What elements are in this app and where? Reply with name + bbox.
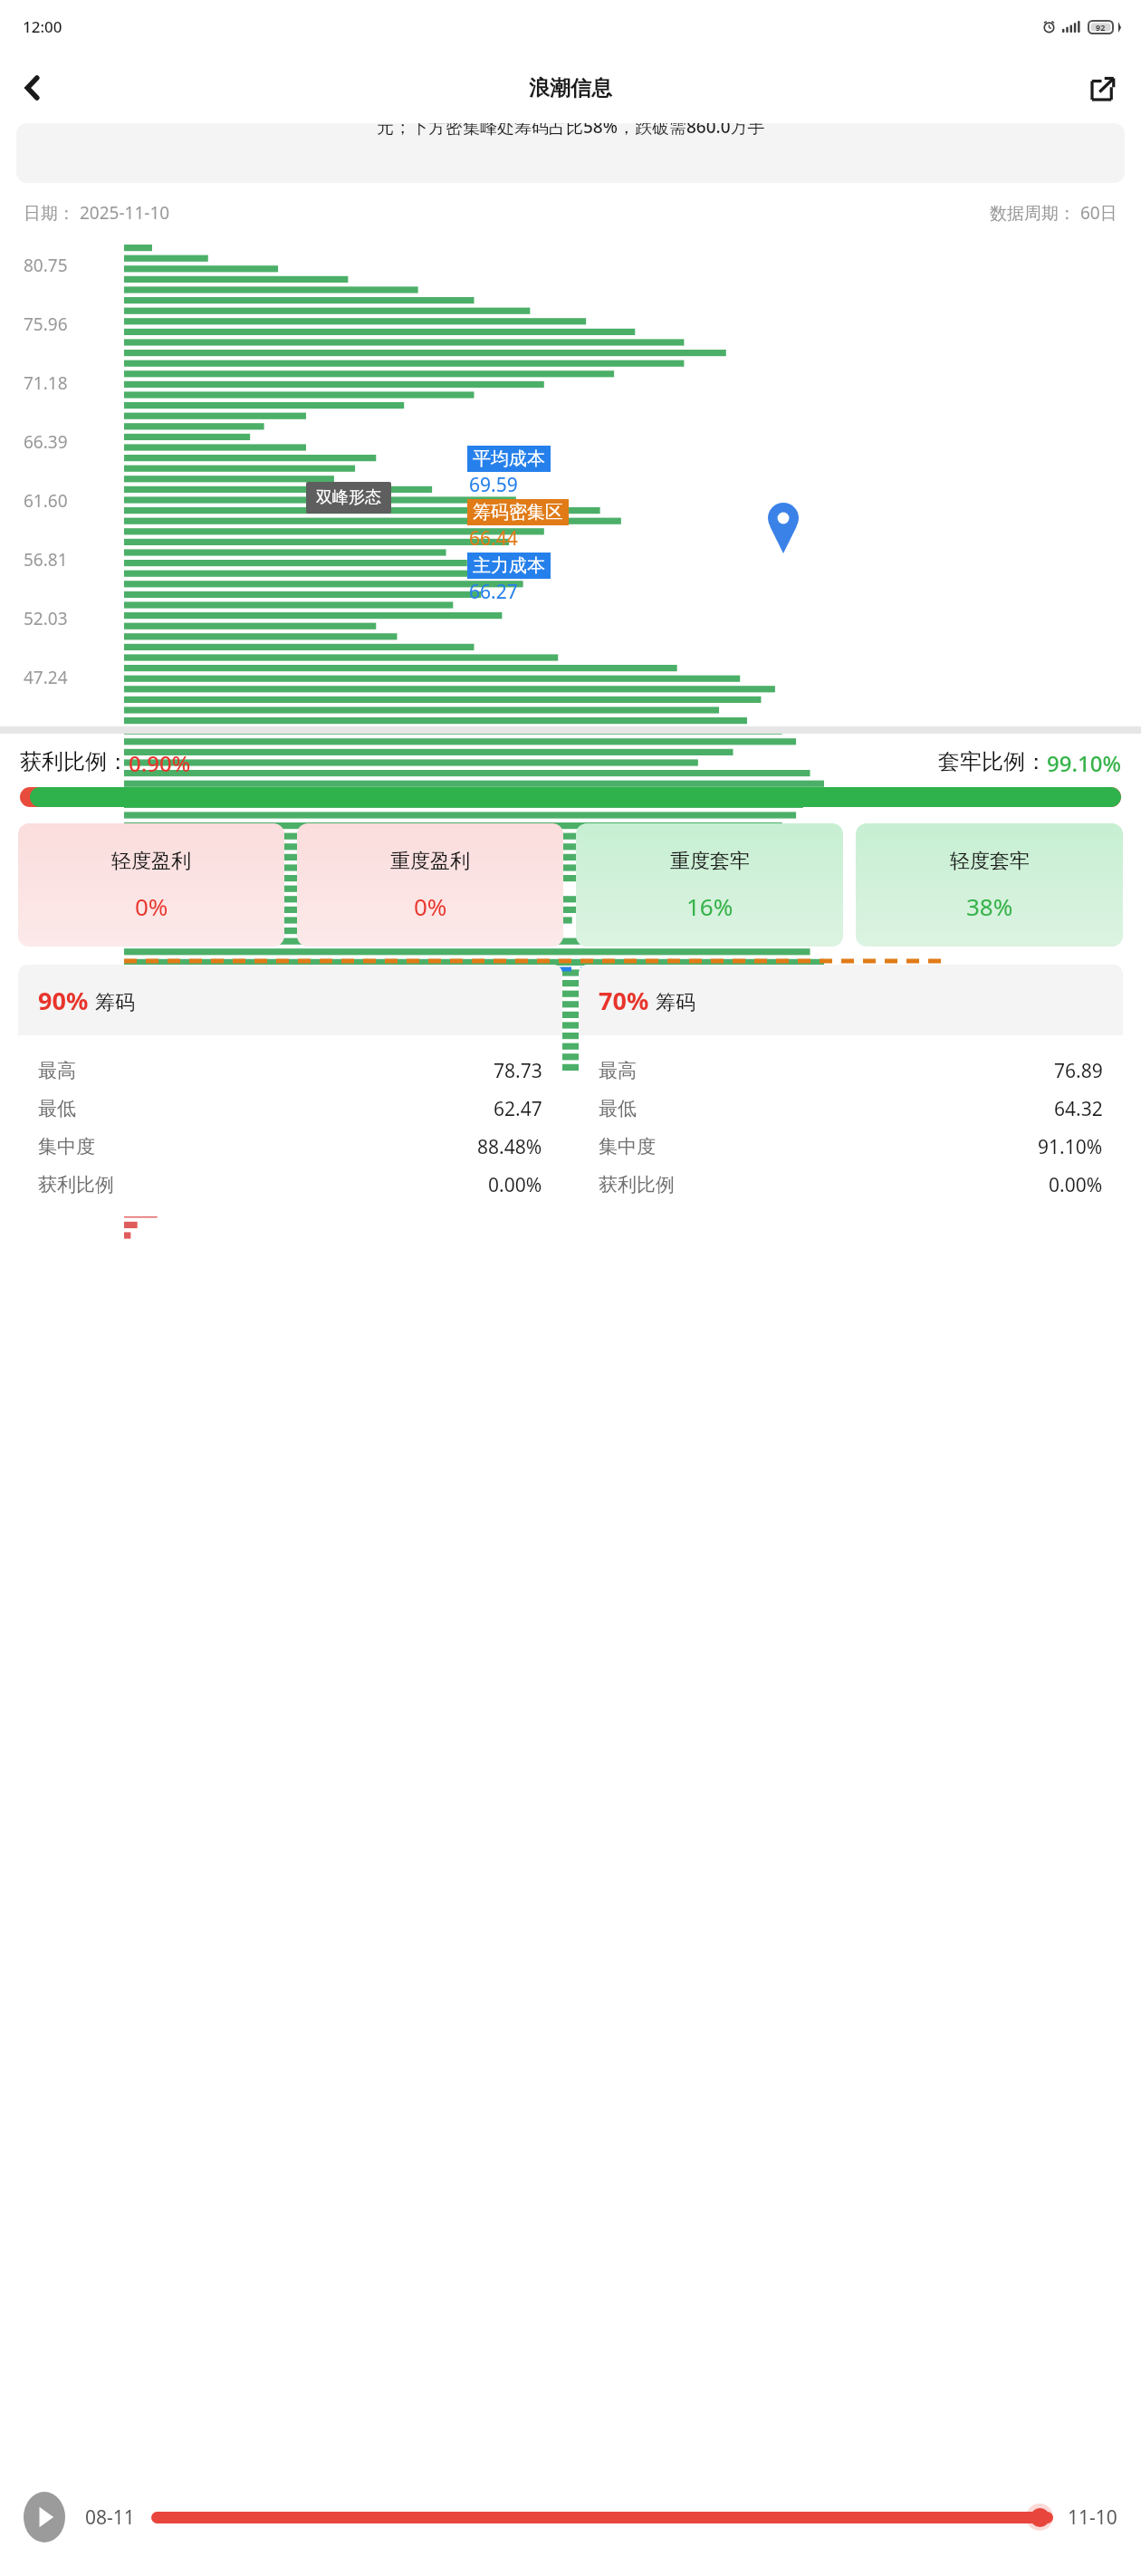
staticText: 轻度套牢 xyxy=(950,849,1030,874)
staticText: 66.27 xyxy=(469,579,518,605)
button[interactable]: Share xyxy=(1078,62,1128,113)
staticText: 76.89 xyxy=(1054,1058,1103,1084)
staticText: 92 xyxy=(1096,22,1106,33)
staticText: 99.10% xyxy=(1047,748,1121,778)
staticText: 75.96 xyxy=(24,312,68,336)
staticText: 0.90% xyxy=(129,748,191,778)
button[interactable]: Back xyxy=(7,62,58,113)
staticText: 最高 xyxy=(599,1059,637,1082)
staticText: 0% xyxy=(414,890,447,922)
staticText: 筹码密集区 xyxy=(473,501,563,524)
staticText: 双峰形态 xyxy=(316,487,381,508)
staticText: 日期： 2025-11-10 xyxy=(24,201,170,225)
staticText: 平均成本 xyxy=(473,447,545,470)
staticText: 66.44 xyxy=(469,525,518,552)
staticText: 90% xyxy=(38,984,89,1017)
staticText: 重度盈利 xyxy=(390,849,470,874)
staticText: 61.60 xyxy=(24,489,68,513)
staticText: 78.73 xyxy=(494,1058,542,1084)
staticText: 最高 xyxy=(38,1059,76,1082)
staticText: 62.47 xyxy=(494,1096,542,1122)
button[interactable]: 重度盈利 xyxy=(297,823,563,947)
staticText: 88.48% xyxy=(477,1134,542,1160)
staticText: 69.59 xyxy=(469,472,518,498)
staticText: 71.18 xyxy=(24,371,68,395)
staticText: 0% xyxy=(135,890,168,922)
staticText: 数据周期： 60日 xyxy=(990,201,1117,225)
staticText: 12:00 xyxy=(23,16,62,37)
button[interactable]: 轻度套牢 xyxy=(856,823,1123,947)
staticText: 38% xyxy=(966,890,1013,922)
staticText: 主力成本 xyxy=(473,554,545,577)
staticText: 11-10 xyxy=(1068,2504,1117,2531)
staticText: 获利比例 xyxy=(38,1173,114,1197)
staticText: 64.32 xyxy=(1054,1096,1103,1122)
staticText: 80.75 xyxy=(24,254,68,277)
staticText: 获利比例 xyxy=(599,1173,675,1197)
button[interactable]: Play xyxy=(24,2492,65,2542)
staticText: 浪潮信息 xyxy=(529,75,612,101)
staticText: 筹码 xyxy=(95,990,135,1015)
staticText: 元；下方密集峰处筹码占比58%，跌破需860.0万手 xyxy=(377,123,765,139)
staticText: 最低 xyxy=(38,1097,76,1120)
staticText: 最低 xyxy=(599,1097,637,1120)
staticText: 集中度 xyxy=(599,1135,656,1158)
staticText: 52.03 xyxy=(24,607,68,630)
staticText: 套牢比例： xyxy=(938,748,1047,775)
staticText: 47.24 xyxy=(24,666,68,689)
staticText: 56.81 xyxy=(24,548,68,572)
staticText: 获利比例： xyxy=(20,748,129,775)
staticText: 筹码 xyxy=(656,990,695,1015)
staticText: 0.00% xyxy=(488,1172,542,1198)
button[interactable]: 元；下方密集峰处筹码占比58%，跌破需860.0万手 xyxy=(16,123,1125,183)
staticText: 集中度 xyxy=(38,1135,95,1158)
button[interactable]: 轻度盈利 xyxy=(18,823,284,947)
staticText: 重度套牢 xyxy=(670,849,750,874)
staticText: 轻度盈利 xyxy=(111,849,191,874)
staticText: 0.00% xyxy=(1049,1172,1103,1198)
staticText: 16% xyxy=(686,890,733,922)
staticText: 66.39 xyxy=(24,430,68,454)
staticText: 91.10% xyxy=(1038,1134,1103,1160)
button[interactable]: 重度套牢 xyxy=(576,823,843,947)
staticText: 08-11 xyxy=(85,2504,135,2531)
button[interactable]: 90% xyxy=(18,965,562,1216)
staticText: 70% xyxy=(599,984,649,1017)
button[interactable]: 70% xyxy=(579,965,1123,1216)
